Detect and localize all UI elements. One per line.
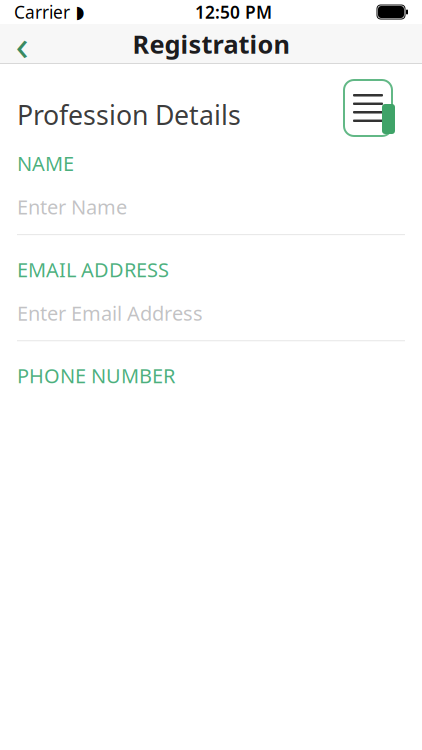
staticText: ◗ bbox=[75, 2, 84, 22]
staticText: PHONE NUMBER bbox=[17, 362, 175, 389]
staticText: ‹ bbox=[15, 16, 28, 72]
staticText: Registration bbox=[132, 27, 289, 61]
staticText: Carrier bbox=[14, 0, 70, 23]
staticText: 12:50 PM bbox=[195, 0, 272, 23]
button[interactable]: Back bbox=[0, 24, 44, 64]
staticText: NAME bbox=[17, 150, 74, 177]
staticText: Enter Name bbox=[17, 194, 127, 220]
staticText: Enter Email Address bbox=[17, 300, 203, 326]
staticText: EMAIL ADDRESS bbox=[17, 256, 169, 283]
staticText: Profession Details bbox=[17, 97, 241, 132]
